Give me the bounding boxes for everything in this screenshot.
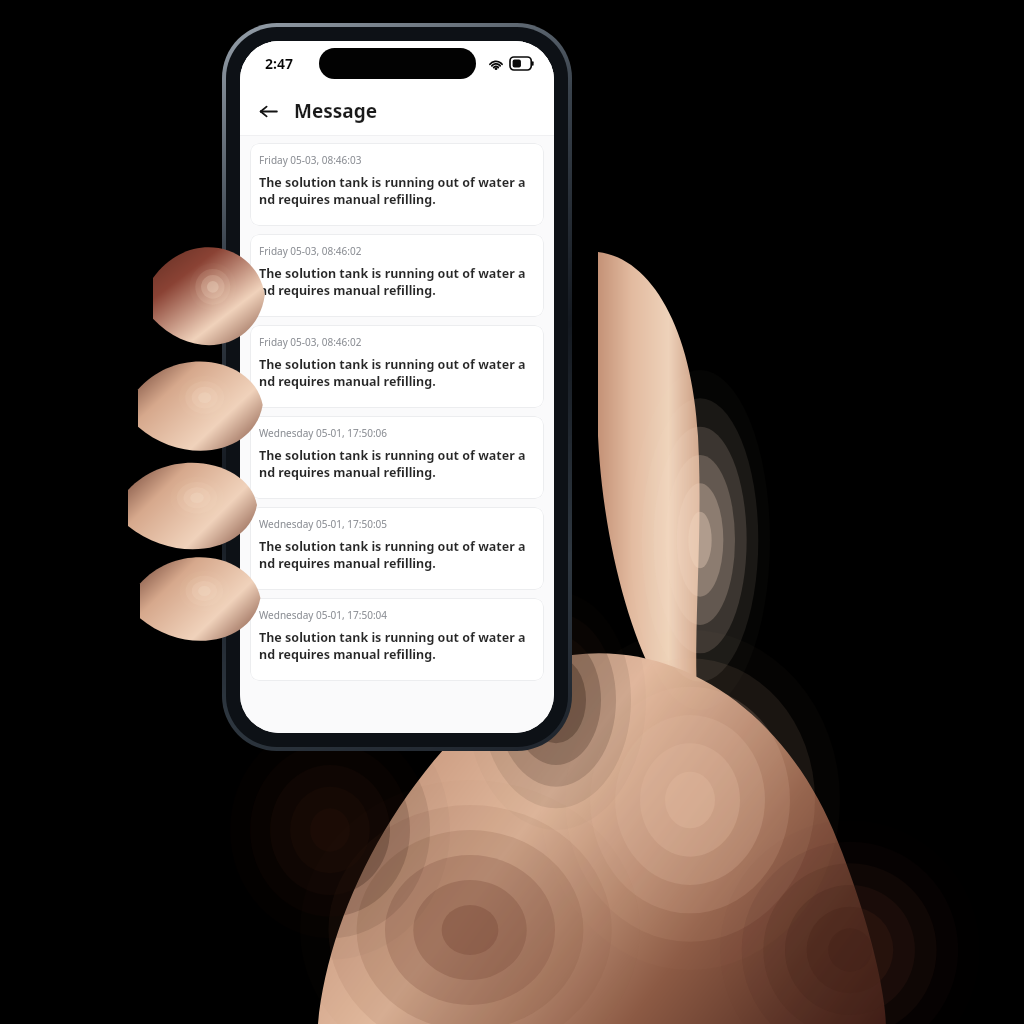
button[interactable]: Back (250, 93, 286, 129)
staticText: The solution tank is running out of wate… (259, 629, 526, 662)
staticText: Friday 05-03, 08:46:02 (259, 335, 362, 349)
staticText: Friday 05-03, 08:46:03 (259, 153, 362, 167)
button[interactable]: Wednesday 05-01, 17:50:05 (250, 507, 544, 590)
staticText: Wednesday 05-01, 17:50:05 (259, 517, 388, 531)
staticText: Wednesday 05-01, 17:50:04 (259, 608, 388, 622)
staticText: The solution tank is running out of wate… (259, 174, 526, 207)
staticText: Friday 05-03, 08:46:02 (259, 244, 362, 258)
button[interactable]: Friday 05-03, 08:46:02 (250, 234, 544, 317)
staticText: The solution tank is running out of wate… (259, 447, 526, 480)
button[interactable]: Wednesday 05-01, 17:50:04 (250, 598, 544, 681)
button[interactable]: Friday 05-03, 08:46:03 (250, 143, 544, 226)
staticText: The solution tank is running out of wate… (259, 356, 526, 389)
staticText: The solution tank is running out of wate… (259, 265, 526, 298)
button[interactable]: Wednesday 05-01, 17:50:06 (250, 416, 544, 499)
staticText: 2:47 (265, 54, 293, 73)
staticText: The solution tank is running out of wate… (259, 538, 526, 571)
staticText: Message (294, 98, 378, 124)
staticText: Wednesday 05-01, 17:50:06 (259, 426, 388, 440)
button[interactable]: Friday 05-03, 08:46:02 (250, 325, 544, 408)
